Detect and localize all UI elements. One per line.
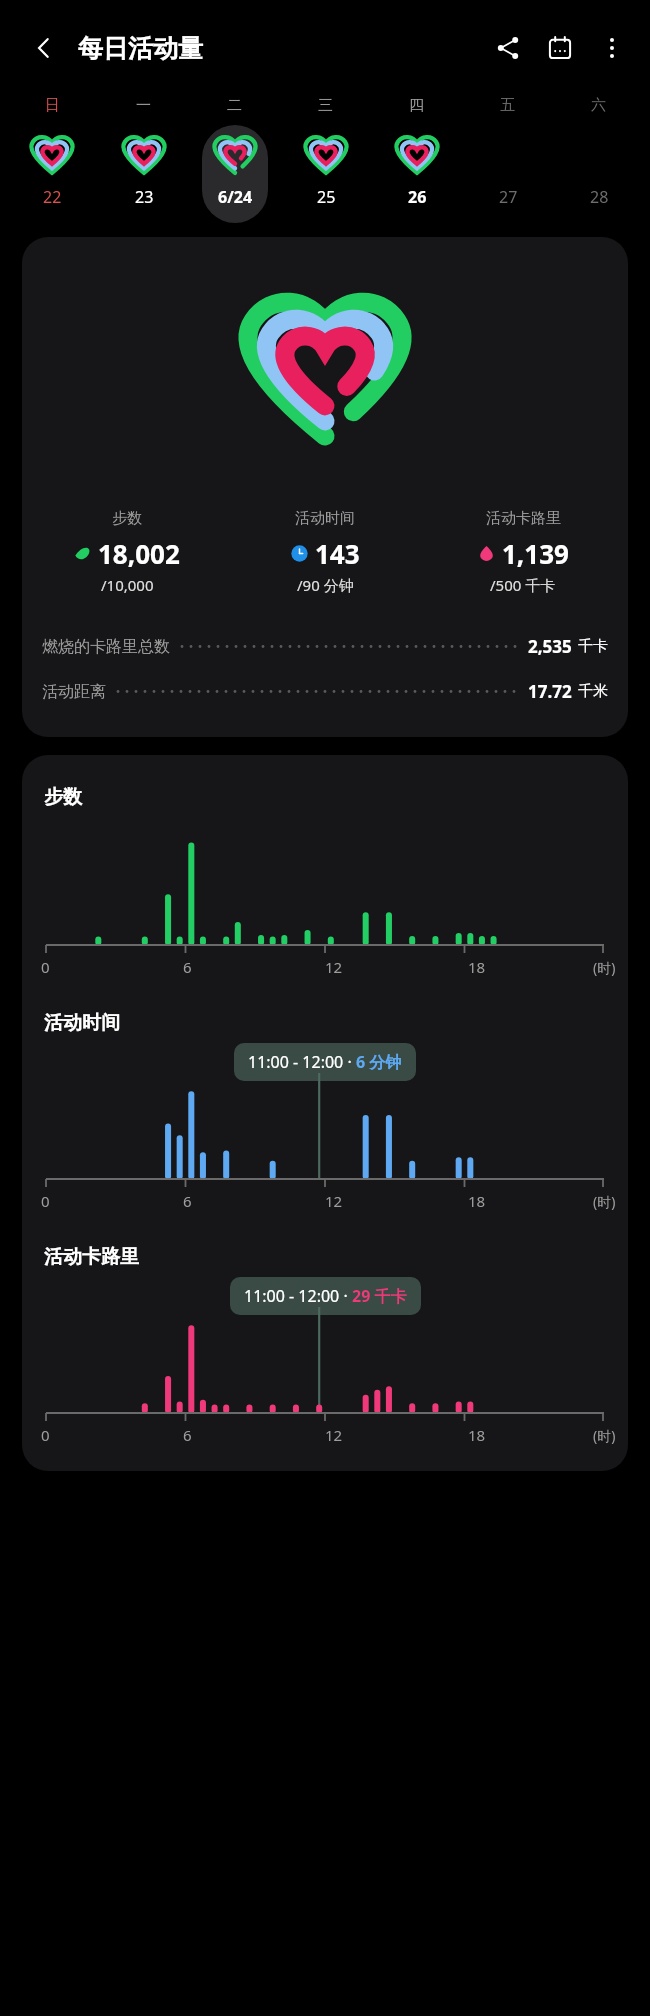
staticText: 燃烧的卡路里总数: [42, 637, 170, 657]
staticText: 0: [41, 957, 50, 977]
staticText: 每日活动量: [78, 33, 203, 64]
button[interactable]: 11:00 - 12:00 ·: [248, 1051, 402, 1073]
button[interactable]: More options: [586, 22, 638, 74]
staticText: 四: [409, 96, 424, 115]
staticText: 143: [315, 536, 360, 571]
staticText: 6: [183, 1191, 192, 1211]
staticText: 六: [591, 96, 606, 115]
staticText: 步数: [44, 785, 82, 809]
staticText: 千米: [578, 682, 608, 701]
staticText: 活动距离: [42, 682, 106, 702]
button[interactable]: 四: [371, 96, 462, 223]
staticText: /500 千卡: [490, 575, 556, 595]
staticText: (时): [593, 958, 616, 977]
staticText: 12: [325, 1191, 343, 1211]
staticText: 6: [183, 1425, 192, 1445]
button[interactable]: Back: [20, 24, 68, 72]
staticText: 活动卡路里: [486, 509, 561, 528]
staticText: 0: [41, 1191, 50, 1211]
staticText: 五: [500, 96, 515, 115]
staticText: 25: [317, 186, 336, 208]
button[interactable]: 五: [462, 96, 553, 223]
staticText: 27: [499, 186, 518, 208]
staticText: /90 分钟: [297, 575, 354, 595]
staticText: 22: [43, 186, 62, 208]
staticText: 26: [408, 186, 427, 208]
staticText: 18: [468, 1425, 486, 1445]
staticText: 活动时间: [295, 509, 355, 528]
staticText: 步数: [112, 509, 142, 528]
staticText: /10,000: [101, 575, 154, 595]
staticText: 29 千卡: [352, 1285, 407, 1307]
button[interactable]: 日: [6, 96, 98, 223]
button[interactable]: 步数: [28, 509, 226, 595]
staticText: 28: [590, 186, 609, 208]
button[interactable]: 步数: [22, 237, 628, 737]
button[interactable]: 活动卡路里: [424, 509, 622, 595]
button[interactable]: 活动距离: [42, 680, 608, 703]
button[interactable]: 11:00 - 12:00 ·: [244, 1285, 407, 1307]
staticText: 18: [468, 1191, 486, 1211]
staticText: 活动时间: [44, 1011, 120, 1035]
staticText: 千卡: [578, 637, 608, 656]
button[interactable]: 六: [553, 96, 644, 223]
staticText: 6 分钟: [356, 1051, 402, 1073]
staticText: 12: [325, 957, 343, 977]
staticText: 二: [227, 96, 242, 115]
staticText: 2,535: [528, 635, 572, 658]
staticText: 23: [135, 186, 154, 208]
button[interactable]: 三: [280, 96, 371, 223]
staticText: 1,139: [502, 536, 569, 571]
staticText: 18: [468, 957, 486, 977]
button[interactable]: 活动时间: [226, 509, 424, 595]
staticText: 三: [318, 96, 333, 115]
staticText: 0: [41, 1425, 50, 1445]
staticText: 11:00 - 12:00 ·: [244, 1285, 352, 1307]
button[interactable]: Calendar: [534, 22, 586, 74]
staticText: 11:00 - 12:00 ·: [248, 1051, 356, 1073]
button[interactable]: 一: [98, 96, 189, 223]
staticText: 17.72: [528, 680, 572, 703]
button[interactable]: 燃烧的卡路里总数: [42, 635, 608, 658]
staticText: (时): [593, 1192, 616, 1211]
staticText: 6/24: [218, 186, 253, 208]
staticText: 12: [325, 1425, 343, 1445]
staticText: 活动卡路里: [44, 1245, 139, 1269]
staticText: 日: [45, 96, 60, 115]
staticText: 18,002: [98, 536, 180, 571]
staticText: 6: [183, 957, 192, 977]
staticText: (时): [593, 1426, 616, 1445]
button[interactable]: Share: [482, 22, 534, 74]
staticText: 一: [136, 96, 151, 115]
button[interactable]: 二: [189, 96, 280, 223]
